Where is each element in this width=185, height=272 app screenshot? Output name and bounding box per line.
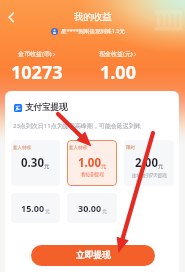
staticText: 金币收益(币) ›	[18, 50, 56, 58]
staticText: 星****刚刚提现到账1.5元	[61, 27, 125, 35]
staticText: 看短剧提现	[81, 172, 104, 178]
staticText: 1.00	[78, 155, 101, 171]
button[interactable]: 限时	[124, 140, 174, 186]
button[interactable]: 15.00	[11, 193, 60, 223]
staticText: 立即提现	[76, 250, 111, 261]
staticText: 1.00	[100, 60, 136, 85]
staticText: 元	[44, 163, 50, 170]
button[interactable]: 30.00	[67, 193, 117, 223]
staticText: 新人特权	[13, 145, 32, 151]
staticText: 新人特权	[69, 145, 88, 151]
staticText: 0.30	[21, 155, 44, 171]
staticText: 元	[45, 208, 50, 214]
staticText: 元	[102, 208, 107, 214]
staticText: 15.00	[21, 202, 45, 214]
staticText: 2.00	[135, 155, 158, 171]
staticText: 连续签到7天提现	[132, 172, 167, 178]
staticText: 元	[158, 163, 164, 170]
staticText: 23点到次日11点为提现高峰期，可能会延迟到账	[13, 122, 141, 130]
button[interactable]: 新人特权	[67, 140, 117, 186]
staticText: 10273	[11, 60, 63, 85]
button[interactable]: 立即提现	[31, 245, 155, 266]
button[interactable]: Back	[2, 8, 20, 26]
button[interactable]: 新人特权	[11, 140, 60, 186]
staticText: 30.00	[78, 202, 102, 214]
staticText: 我的收益	[74, 11, 112, 23]
staticText: 支付宝提现	[25, 102, 68, 113]
staticText: 元	[101, 163, 107, 170]
staticText: 限时	[126, 145, 136, 151]
staticText: 现金收益(元) ›	[99, 50, 137, 58]
